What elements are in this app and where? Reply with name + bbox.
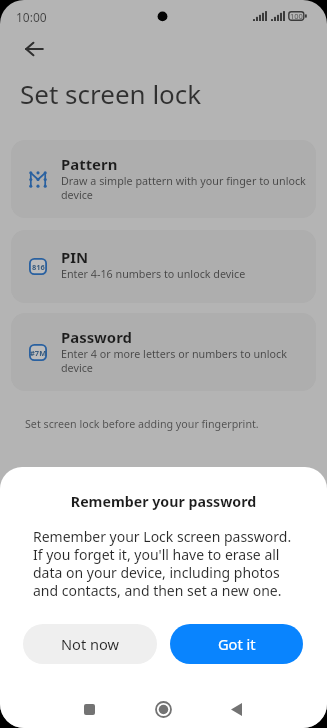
staticText: Pattern [61,154,118,174]
button[interactable]: Not now [23,624,157,664]
staticText: 100 [290,11,303,21]
button[interactable]: #7M [11,313,316,391]
staticText: Enter 4 or more letters or numbers to un… [61,347,316,375]
staticText: 10:00 [16,9,47,25]
staticText: Set screen lock [20,76,202,111]
button[interactable]: Pattern [11,140,316,218]
staticText: Enter 4-16 numbers to unlock device [61,267,246,282]
staticText: #7M [30,348,47,358]
button[interactable]: Home [141,690,185,728]
staticText: Not now [61,634,120,654]
button[interactable]: Got it [170,624,303,664]
staticText: Password [61,327,132,347]
staticText: Got it [218,634,256,654]
button[interactable]: Recents [67,690,111,728]
button[interactable]: 816 [11,230,316,303]
button[interactable]: Back [214,690,258,728]
staticText: 816 [32,262,45,272]
staticText: PIN [61,247,89,267]
staticText: Draw a simple pattern with your finger t… [61,174,316,202]
button[interactable]: Back [12,27,56,71]
staticText: Remember your Lock screen password. If y… [33,527,297,600]
staticText: Remember your password [0,492,327,511]
staticText: Set screen lock before adding your finge… [25,417,259,432]
